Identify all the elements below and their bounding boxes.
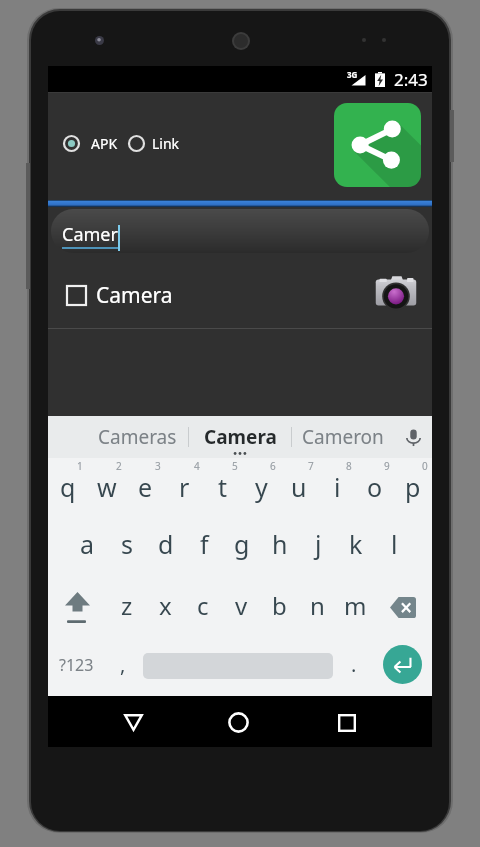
button[interactable]: b (260, 576, 298, 634)
button[interactable]: Shift (48, 576, 107, 634)
button[interactable]: t (204, 458, 242, 518)
button[interactable]: s (107, 518, 146, 576)
staticText: c (197, 589, 209, 622)
button[interactable]: r (165, 458, 204, 518)
button[interactable]: Recents (315, 696, 379, 747)
staticText: r (179, 470, 190, 504)
button[interactable]: x (146, 576, 184, 634)
button[interactable]: m (336, 576, 374, 634)
button[interactable]: a (68, 518, 107, 576)
staticText: y (255, 470, 268, 504)
staticText: t (218, 470, 228, 504)
staticText: 6 (270, 459, 276, 473)
staticText: 2 (116, 459, 122, 473)
staticText: p (405, 470, 421, 504)
button[interactable]: u (280, 458, 318, 518)
staticText: v (235, 589, 248, 622)
button[interactable]: k (337, 518, 375, 576)
staticText: f (200, 527, 209, 561)
staticText: 9 (384, 459, 390, 473)
staticText: n (310, 589, 325, 622)
button[interactable]: Camer (51, 209, 429, 253)
button[interactable]: Home (206, 696, 270, 747)
button[interactable]: g (223, 518, 261, 576)
button[interactable]: w (87, 458, 126, 518)
staticText: 5 (232, 459, 238, 473)
button[interactable]: c (184, 576, 222, 634)
button[interactable]: Camera (48, 254, 432, 328)
button[interactable]: p (394, 458, 432, 518)
staticText: q (60, 470, 76, 504)
staticText: a (80, 527, 95, 561)
staticText: d (158, 527, 174, 561)
staticText: z (121, 589, 133, 622)
button[interactable]: Back (101, 696, 165, 747)
button[interactable]: o (356, 458, 394, 518)
button[interactable]: Enter (372, 634, 432, 695)
button[interactable]: l (375, 518, 413, 576)
staticText: Link (152, 134, 180, 153)
staticText: Camer (62, 222, 118, 247)
button[interactable]: , (104, 634, 141, 695)
staticText: e (138, 470, 153, 504)
staticText: . (351, 651, 357, 678)
staticText: j (315, 527, 322, 561)
staticText: h (272, 527, 288, 561)
button[interactable]: y (242, 458, 280, 518)
staticText: Cameras (98, 424, 177, 450)
staticText: s (121, 527, 133, 561)
button[interactable]: APK (63, 134, 118, 153)
staticText: u (291, 470, 307, 504)
staticText: 1 (77, 459, 83, 473)
button[interactable]: Voice input (394, 416, 432, 458)
staticText: x (159, 589, 172, 622)
button[interactable]: Link (128, 134, 180, 153)
button[interactable]: z (107, 576, 146, 634)
button[interactable]: h (261, 518, 299, 576)
staticText: o (367, 470, 383, 504)
staticText: g (234, 527, 250, 561)
staticText: k (349, 527, 363, 561)
button[interactable] (141, 634, 335, 695)
button[interactable]: Share (334, 103, 421, 187)
button[interactable]: . (335, 634, 372, 695)
staticText: , (120, 651, 126, 678)
button[interactable]: j (299, 518, 337, 576)
button[interactable]: e (126, 458, 165, 518)
staticText: 3G (347, 69, 358, 80)
button[interactable]: Camera (189, 416, 291, 458)
button[interactable]: d (146, 518, 185, 576)
staticText: b (272, 589, 287, 622)
staticText: 3 (155, 459, 161, 473)
staticText: 8 (346, 459, 352, 473)
button[interactable]: i (318, 458, 356, 518)
staticText: Camera (204, 424, 277, 450)
button[interactable]: v (222, 576, 260, 634)
staticText: Camera (96, 281, 173, 310)
staticText: l (391, 527, 398, 561)
staticText: 4 (194, 459, 200, 473)
staticText: 2:43 (394, 68, 428, 91)
button[interactable]: Cameras (86, 416, 188, 458)
button[interactable]: Backspace (374, 576, 432, 634)
staticText: w (97, 470, 117, 504)
staticText: m (344, 589, 367, 622)
staticText: i (334, 470, 341, 504)
button[interactable]: n (298, 576, 336, 634)
button[interactable]: ?123 (48, 634, 104, 695)
staticText: Cameron (302, 424, 384, 450)
staticText: ?123 (59, 654, 94, 676)
staticText: 0 (422, 459, 428, 473)
button[interactable]: Cameron (292, 416, 394, 458)
button[interactable]: q (48, 458, 87, 518)
staticText: 7 (308, 459, 314, 473)
staticText: APK (91, 134, 118, 153)
button[interactable]: f (185, 518, 223, 576)
